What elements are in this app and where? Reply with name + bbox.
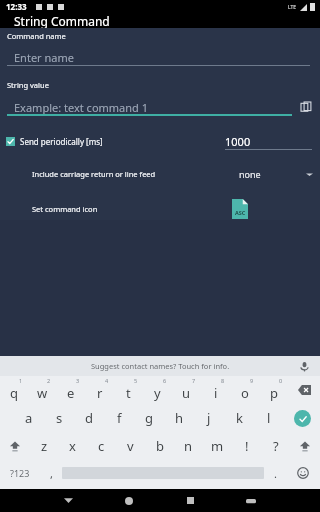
staticText: p (270, 384, 278, 402)
button[interactable]: Keyboard (238, 489, 264, 512)
button[interactable]: Home (116, 489, 142, 512)
button[interactable]: z (30, 432, 58, 460)
staticText: 5 (134, 377, 138, 384)
staticText: j (207, 409, 211, 427)
button[interactable]: ?123 (0, 460, 40, 486)
staticText: f (117, 409, 122, 427)
staticText: n (184, 437, 193, 455)
button[interactable]: Backspace (288, 376, 320, 404)
staticText: s (56, 409, 63, 427)
button[interactable]: Shift (0, 432, 30, 460)
button[interactable]: d (74, 404, 104, 432)
button[interactable]: 1000 (225, 132, 312, 150)
staticText: d (85, 409, 93, 427)
staticText: u (182, 384, 191, 402)
button[interactable]: s (44, 404, 74, 432)
staticText: o (241, 384, 249, 402)
button[interactable]: 4 (85, 376, 114, 404)
button[interactable]: g (134, 404, 164, 432)
button[interactable]: k (224, 404, 254, 432)
staticText: Command name (7, 31, 66, 41)
staticText: k (236, 409, 243, 427)
staticText: e (67, 384, 75, 402)
staticText: i (214, 384, 218, 402)
staticText: Include carriage return or line feed (32, 169, 156, 179)
button[interactable]: Send periodically [ms] (6, 136, 103, 147)
staticText: ?123 (10, 467, 30, 479)
button[interactable]: c (87, 432, 116, 460)
staticText: 3 (76, 377, 80, 384)
button[interactable]: j (194, 404, 224, 432)
staticText: 6 (163, 377, 167, 384)
button[interactable]: 0 (259, 376, 288, 404)
button[interactable]: Copy (292, 97, 320, 117)
button[interactable]: Recents (177, 489, 203, 512)
button[interactable]: Set command icon (0, 198, 320, 220)
button[interactable]: Emoji (286, 460, 320, 486)
staticText: Set command icon (32, 204, 98, 214)
button[interactable]: ! (232, 432, 261, 460)
staticText: String value (7, 80, 49, 90)
button[interactable]: 2 (28, 376, 56, 404)
staticText: m (211, 437, 224, 455)
staticText: Example: text command 1 (14, 100, 149, 115)
staticText: ? (273, 437, 279, 455)
staticText: 1 (19, 377, 23, 384)
staticText: v (127, 437, 134, 455)
staticText: Send periodically [ms] (20, 136, 103, 147)
staticText: z (41, 437, 48, 455)
staticText: ! (245, 437, 249, 455)
staticText: y (154, 384, 161, 402)
button[interactable]: ? (261, 432, 290, 460)
button[interactable]: . (264, 460, 286, 486)
staticText: c (98, 437, 105, 455)
staticText: 0 (279, 377, 283, 384)
button[interactable]: Enter name (7, 49, 310, 66)
button[interactable]: x (58, 432, 87, 460)
staticText: 12:33 (6, 1, 27, 12)
button[interactable]: Include carriage return or line feed (0, 164, 320, 184)
staticText: 8 (221, 377, 225, 384)
button[interactable]: 1 (0, 376, 28, 404)
button[interactable]: b (145, 432, 174, 460)
button[interactable]: Example: text command 1 (7, 99, 292, 116)
staticText: none (239, 168, 261, 180)
button[interactable]: l (254, 404, 284, 432)
button[interactable]: 6 (143, 376, 172, 404)
button[interactable]: a (14, 404, 44, 432)
button[interactable]: Shift (290, 432, 320, 460)
button[interactable]: Voice input (297, 359, 311, 373)
button[interactable]: n (174, 432, 203, 460)
staticText: x (69, 437, 76, 455)
button[interactable]: v (116, 432, 145, 460)
staticText: ASC (235, 209, 246, 216)
staticText: 2 (47, 377, 51, 384)
button[interactable]: 3 (56, 376, 85, 404)
staticText: t (126, 384, 131, 402)
button[interactable]: Done (284, 404, 320, 432)
button[interactable]: 5 (114, 376, 143, 404)
staticText: 9 (250, 377, 254, 384)
staticText: Enter name (14, 50, 74, 65)
staticText: 1000 (225, 134, 251, 149)
button[interactable]: 9 (230, 376, 259, 404)
button[interactable]: Back (55, 489, 81, 512)
button[interactable]: h (164, 404, 194, 432)
button[interactable]: f (104, 404, 134, 432)
staticText: LTE (288, 4, 297, 11)
staticText: Suggest contact names? Touch for info. (91, 361, 230, 371)
staticText: b (156, 437, 164, 455)
staticText: . (274, 466, 277, 481)
button[interactable]: 8 (201, 376, 230, 404)
button[interactable]: 7 (172, 376, 201, 404)
button[interactable]: , (40, 460, 62, 486)
staticText: 4 (105, 377, 109, 384)
staticText: q (10, 384, 18, 402)
staticText: l (267, 409, 271, 427)
staticText: r (97, 384, 103, 402)
staticText: String Command (14, 13, 110, 28)
staticText: h (175, 409, 184, 427)
staticText: , (50, 466, 53, 481)
button[interactable]: m (203, 432, 232, 460)
